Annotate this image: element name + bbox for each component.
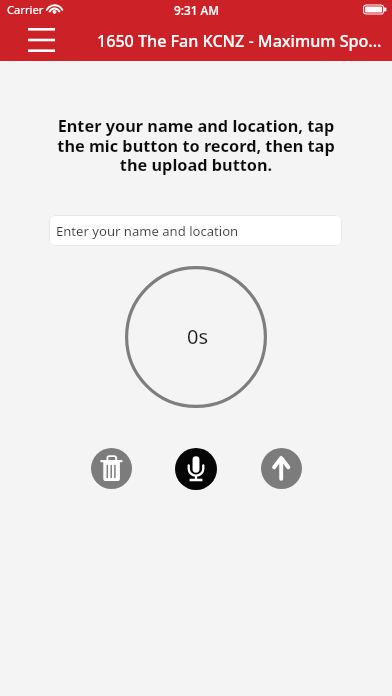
button[interactable]: Delete recording bbox=[91, 448, 132, 489]
staticText: Enter your name and location, tap the mi… bbox=[16, 115, 376, 176]
button[interactable]: Record bbox=[175, 448, 217, 490]
button[interactable]: Upload recording bbox=[261, 448, 302, 489]
staticText: Carrier bbox=[7, 2, 44, 17]
staticText: 1650 The Fan KCNZ - Maximum Spo... bbox=[97, 30, 387, 52]
staticText: 9:31 AM bbox=[174, 2, 220, 18]
button[interactable]: Menu bbox=[16, 23, 67, 57]
button[interactable]: Enter your name and location bbox=[49, 215, 342, 246]
staticText: 0s bbox=[187, 323, 209, 350]
staticText: Enter your name and location bbox=[56, 222, 239, 240]
